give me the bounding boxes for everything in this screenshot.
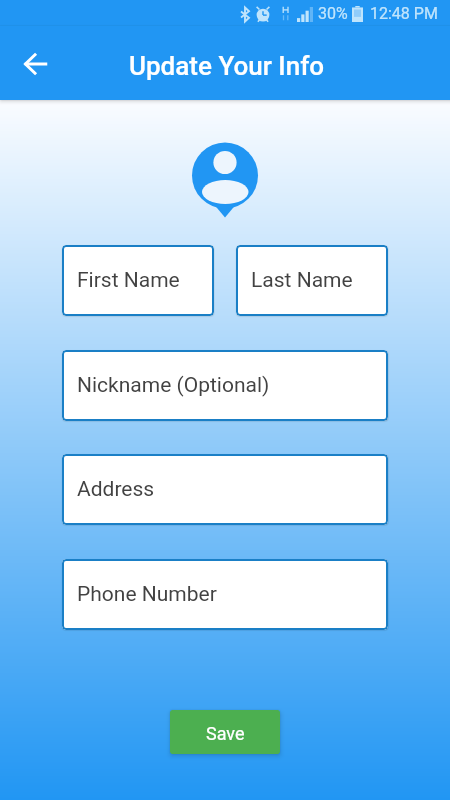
- button[interactable]: Address: [62, 454, 388, 525]
- staticText: Save: [206, 723, 245, 744]
- staticText: First Name: [77, 268, 180, 293]
- button[interactable]: Phone Number: [62, 559, 388, 630]
- button[interactable]: First Name: [62, 245, 214, 316]
- button[interactable]: Save: [170, 710, 280, 754]
- staticText: Nickname (Optional): [77, 373, 270, 398]
- staticText: 30%: [318, 4, 348, 23]
- staticText: Last Name: [251, 268, 353, 293]
- button[interactable]: Nickname (Optional): [62, 350, 388, 421]
- staticText: 12:48 PM: [370, 4, 438, 23]
- button[interactable]: Last Name: [236, 245, 388, 316]
- button[interactable]: Back: [13, 42, 56, 85]
- staticText: Address: [77, 477, 155, 502]
- staticText: Update Your Info: [129, 51, 325, 81]
- staticText: Phone Number: [77, 582, 217, 607]
